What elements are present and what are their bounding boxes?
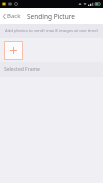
staticText: Selected Frame (4, 66, 40, 73)
button[interactable]: Back (2, 11, 22, 21)
staticText: Sending Picture (27, 12, 75, 21)
staticText: Add photos to send( max 8 images at one … (5, 28, 98, 34)
staticText: Back (7, 12, 21, 20)
button[interactable]: Add photo (4, 41, 23, 60)
